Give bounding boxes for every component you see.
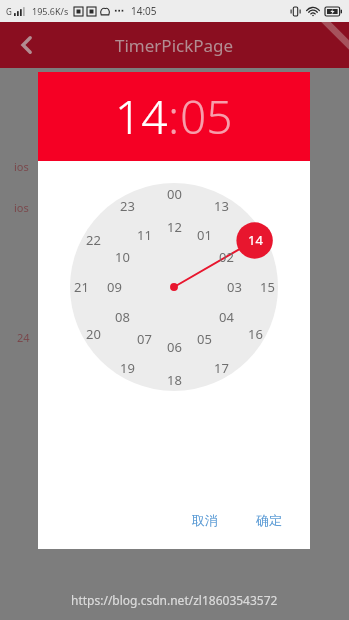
staticText: 取消	[192, 512, 218, 528]
staticText: 20	[86, 325, 101, 343]
button[interactable]: 14	[115, 85, 168, 148]
button[interactable]: 01	[197, 226, 212, 244]
staticText: 07	[137, 330, 152, 348]
button[interactable]: 20	[86, 325, 101, 343]
button[interactable]: 11	[137, 226, 152, 244]
button[interactable]: 23	[120, 197, 135, 215]
staticText: :	[168, 85, 180, 148]
staticText: 08	[115, 308, 130, 326]
button[interactable]: 06	[167, 338, 182, 356]
button[interactable]: 16	[248, 325, 263, 343]
staticText: G	[6, 6, 12, 17]
staticText: 18	[167, 371, 182, 389]
staticText: 14:05	[131, 4, 157, 18]
staticText: 14	[115, 85, 168, 148]
button[interactable]: 04	[219, 308, 234, 326]
staticText: 10	[115, 248, 130, 266]
button[interactable]: 18	[167, 371, 182, 389]
staticText: 09	[107, 278, 122, 296]
staticText: ios	[14, 200, 29, 215]
button[interactable]: 21	[74, 278, 89, 296]
button[interactable]: 02	[219, 248, 234, 266]
staticText: ⋯	[114, 5, 124, 17]
button[interactable]: 13	[214, 197, 229, 215]
staticText: 16	[248, 325, 263, 343]
staticText: 00	[167, 185, 182, 203]
staticText: 19	[120, 359, 135, 377]
staticText: 22	[86, 231, 101, 249]
staticText: 195.6K/s	[32, 5, 69, 17]
staticText: 05	[180, 85, 233, 148]
staticText: 02	[219, 248, 234, 266]
button[interactable]: 17	[214, 359, 229, 377]
button[interactable]: 09	[107, 278, 122, 296]
button[interactable]: 22	[86, 231, 101, 249]
button[interactable]: 19	[120, 359, 135, 377]
button[interactable]: 08	[115, 308, 130, 326]
staticText: 24	[17, 330, 30, 345]
staticText: 11	[137, 226, 152, 244]
staticText: 01	[197, 226, 212, 244]
staticText: 17	[214, 359, 229, 377]
button[interactable]: 00	[167, 185, 182, 203]
staticText: https://blog.csdn.net/zl18603543572	[71, 592, 278, 608]
staticText: 15	[260, 278, 275, 296]
button[interactable]: 确定	[246, 506, 292, 534]
button[interactable]: 14	[248, 231, 263, 249]
staticText: 确定	[256, 512, 282, 528]
staticText: 14	[248, 231, 263, 249]
button[interactable]: 12	[167, 218, 182, 236]
staticText: 04	[219, 308, 234, 326]
button[interactable]: Back	[6, 24, 48, 66]
button[interactable]: 取消	[182, 506, 228, 534]
button[interactable]: 07	[137, 330, 152, 348]
button[interactable]: 10	[115, 248, 130, 266]
staticText: 06	[167, 338, 182, 356]
button[interactable]: 05	[197, 330, 212, 348]
staticText: 23	[120, 197, 135, 215]
staticText: 12	[167, 218, 182, 236]
staticText: 03	[227, 278, 242, 296]
staticText: ios	[14, 159, 29, 174]
staticText: 13	[214, 197, 229, 215]
button[interactable]: 03	[227, 278, 242, 296]
button[interactable]: 05	[180, 85, 233, 148]
staticText: 05	[197, 330, 212, 348]
button[interactable]: 15	[260, 278, 275, 296]
staticText: TimerPickPage	[115, 34, 234, 57]
staticText: 21	[74, 278, 89, 296]
